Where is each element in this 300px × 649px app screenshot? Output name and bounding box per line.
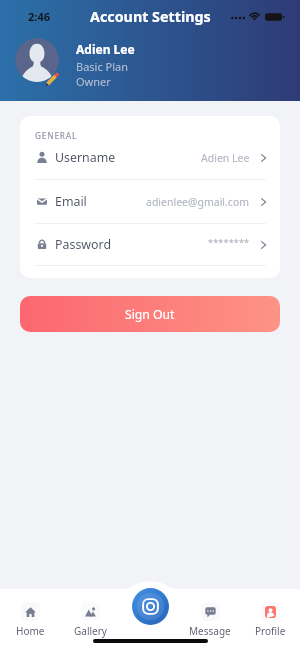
staticText: Home: [16, 624, 45, 638]
staticText: Profile: [255, 624, 286, 638]
button[interactable]: Gallery: [60, 602, 120, 638]
staticText: Account Settings: [90, 7, 211, 26]
staticText: GENERAL: [35, 130, 78, 141]
staticText: Adien Lee: [76, 41, 135, 57]
button[interactable]: Home: [0, 602, 60, 638]
staticText: Email: [55, 193, 87, 210]
staticText: ********: [208, 236, 250, 248]
staticText: Gallery: [74, 624, 107, 638]
staticText: adienlee@gmail.com: [146, 195, 250, 209]
button[interactable]: Sign Out: [20, 296, 280, 332]
staticText: Sign Out: [125, 306, 175, 323]
staticText: Message: [189, 624, 231, 638]
staticText: Password: [55, 236, 112, 253]
staticText: Username: [55, 149, 116, 166]
staticText: Adien Lee: [201, 151, 250, 165]
button[interactable]: Username: [20, 136, 280, 179]
staticText: 2:46: [28, 9, 50, 24]
button[interactable]: Email: [20, 180, 280, 223]
button[interactable]: Camera: [132, 588, 169, 625]
button[interactable]: Message: [180, 602, 240, 638]
button[interactable]: Password: [20, 224, 280, 265]
button[interactable]: Profile: [240, 602, 300, 638]
staticText: Owner: [76, 74, 111, 89]
staticText: Basic Plan: [76, 59, 129, 74]
